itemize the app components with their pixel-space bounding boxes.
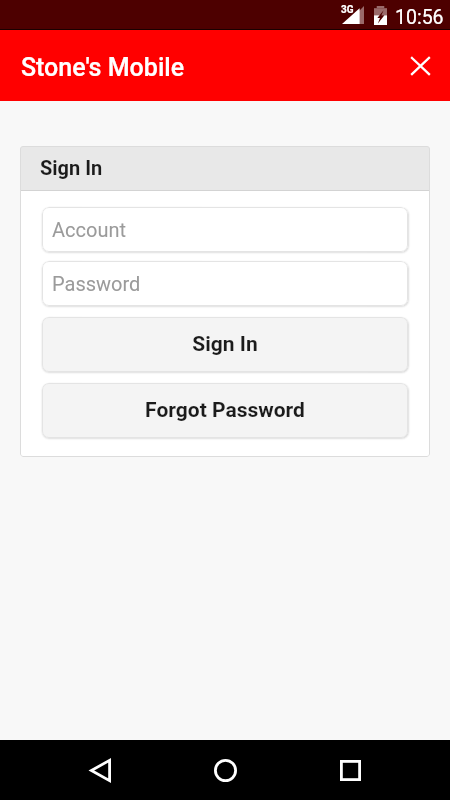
staticText: Forgot Password [145,398,305,423]
button[interactable]: Account [42,207,408,252]
staticText: Sign In [192,332,258,357]
button[interactable]: Sign In [42,317,408,372]
button[interactable]: Back [64,740,136,800]
button[interactable]: Forgot Password [42,383,408,438]
staticText: Stone's Mobile [21,53,185,82]
button[interactable]: Close [397,43,443,89]
staticText: Sign In [40,156,103,179]
staticText: 10:56 [395,6,444,29]
button[interactable]: Password [42,261,408,306]
staticText: Password [52,272,141,295]
button[interactable]: Recents [314,740,386,800]
staticText: 3G [341,4,354,16]
staticText: Account [52,218,127,241]
button[interactable]: Home [189,740,261,800]
